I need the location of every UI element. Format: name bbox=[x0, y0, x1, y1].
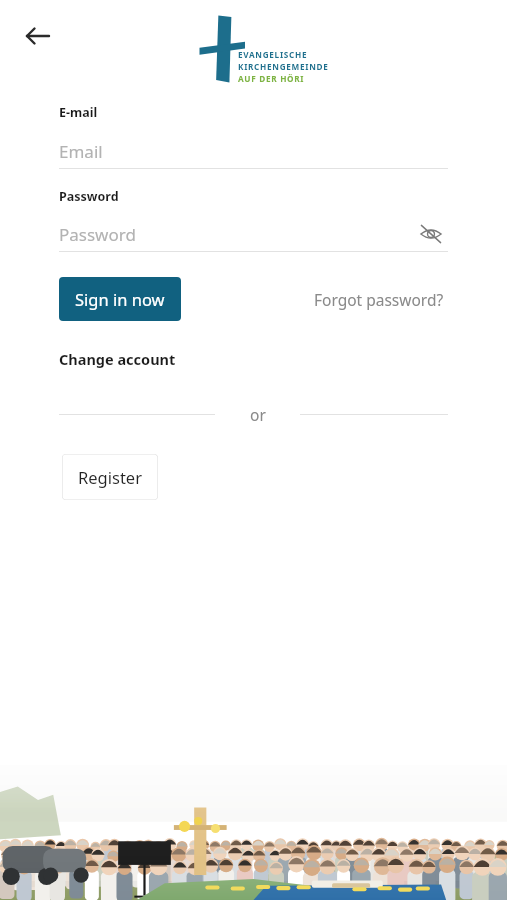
staticText: Sign in now bbox=[75, 288, 165, 310]
staticText: or bbox=[250, 404, 266, 425]
button[interactable]: Show password bbox=[414, 217, 448, 251]
button[interactable]: Sign in now bbox=[59, 277, 181, 321]
staticText: KIRCHENGEMEINDE bbox=[238, 61, 329, 72]
staticText: Change account bbox=[59, 349, 176, 369]
button[interactable]: Back bbox=[14, 12, 62, 60]
button[interactable]: Forgot password? bbox=[310, 283, 448, 316]
staticText: Register bbox=[78, 466, 142, 488]
staticText: E-mail bbox=[59, 104, 98, 121]
button[interactable]: Email bbox=[59, 134, 448, 168]
button[interactable]: Register bbox=[62, 454, 158, 500]
button[interactable]: Password bbox=[59, 217, 414, 251]
staticText: Password bbox=[59, 223, 136, 246]
staticText: Email bbox=[59, 140, 103, 163]
staticText: EVANGELISCHE bbox=[238, 49, 308, 60]
staticText: Forgot password? bbox=[314, 289, 444, 310]
button[interactable]: Change account bbox=[59, 346, 176, 372]
staticText: Password bbox=[59, 188, 119, 205]
staticText: AUF DER HÖRI bbox=[238, 73, 305, 84]
